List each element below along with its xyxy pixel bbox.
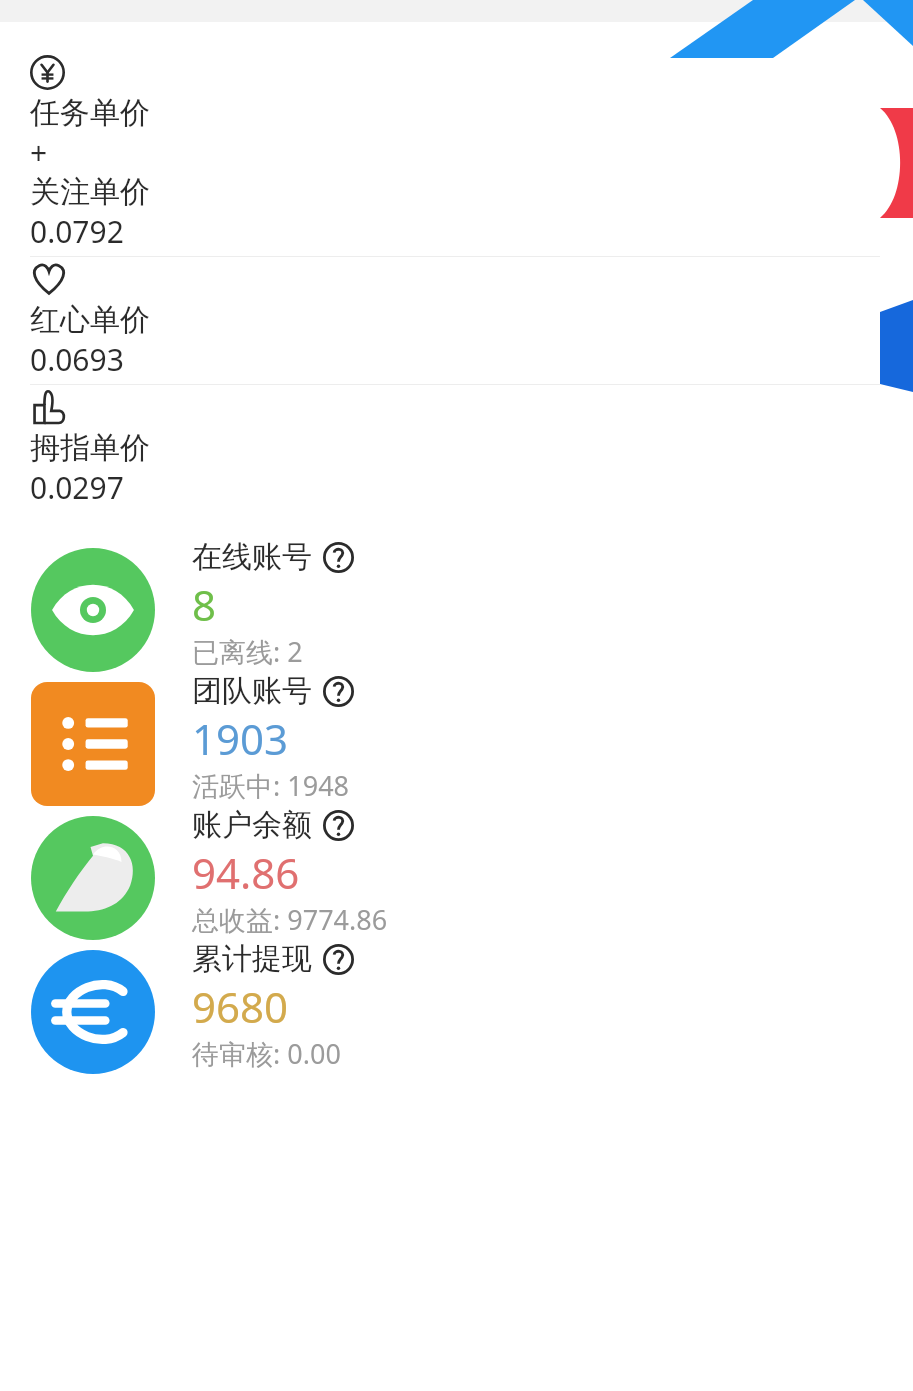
other: Help <box>323 944 354 975</box>
other: Thumbs up <box>30 388 68 426</box>
staticText: 活跃中: 1948 <box>192 767 350 804</box>
other: Yen <box>30 55 65 90</box>
staticText: 94.86 <box>192 844 300 901</box>
other: Heart <box>30 260 68 298</box>
staticText: 在线账号 <box>192 538 312 576</box>
staticText: 9680 <box>192 978 289 1035</box>
button[interactable]: Total withdrawn <box>0 940 913 1074</box>
staticText: + <box>30 132 48 173</box>
other: Help <box>323 542 354 573</box>
button[interactable]: Thumbs up <box>0 385 913 512</box>
button[interactable]: Online accounts <box>0 538 913 672</box>
staticText: 拇指单价 <box>30 429 150 467</box>
other: Help <box>323 810 354 841</box>
staticText: 待审核: 0.00 <box>192 1035 341 1072</box>
staticText: 账户余额 <box>192 806 312 844</box>
button[interactable]: Team accounts <box>0 672 913 806</box>
staticText: 0.0693 <box>30 339 124 380</box>
other: Account balance <box>31 816 155 940</box>
staticText: 已离线: 2 <box>192 633 303 670</box>
other: Team accounts <box>31 682 155 806</box>
staticText: 关注单价 <box>30 173 150 211</box>
staticText: 任务单价 <box>30 94 150 132</box>
staticText: 团队账号 <box>192 672 312 710</box>
staticText: 累计提现 <box>192 940 312 978</box>
button[interactable]: Account balance <box>0 806 913 940</box>
other: Help <box>323 676 354 707</box>
staticText: 0.0297 <box>30 467 124 508</box>
staticText: 1903 <box>192 710 289 767</box>
other: Online accounts <box>31 548 155 672</box>
other: Total withdrawn <box>31 950 155 1074</box>
staticText: 总收益: 9774.86 <box>192 901 388 938</box>
button[interactable]: Yen <box>0 50 913 256</box>
button[interactable]: Heart <box>0 257 913 384</box>
staticText: 红心单价 <box>30 301 150 339</box>
staticText: 0.0792 <box>30 211 124 252</box>
staticText: 8 <box>192 576 217 633</box>
